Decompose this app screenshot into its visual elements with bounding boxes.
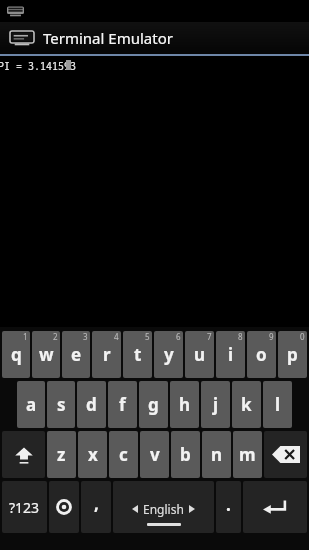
staticText: 7 [207, 331, 212, 342]
other: Keyboard active [7, 5, 24, 17]
staticText: o [256, 343, 267, 366]
staticText: x [88, 443, 98, 466]
staticText: s [57, 393, 66, 416]
staticText: 1 [23, 331, 28, 342]
button[interactable]: Enter [243, 481, 307, 533]
staticText: z [57, 443, 66, 466]
staticText: m [239, 443, 256, 466]
button[interactable]: u [185, 331, 214, 378]
button[interactable]: i [216, 331, 245, 378]
staticText: g [148, 393, 159, 416]
staticText: q [11, 343, 22, 366]
button[interactable]: w [32, 331, 60, 378]
staticText: , [94, 492, 99, 515]
button[interactable]: r [92, 331, 121, 378]
staticText: 9 [269, 331, 274, 342]
staticText: 5 [145, 331, 150, 342]
staticText: j [213, 393, 219, 416]
staticText: PI = 3.141593 [0, 59, 76, 73]
staticText: 2 [53, 331, 58, 342]
staticText: l [275, 393, 281, 416]
staticText: 3 [83, 331, 88, 342]
staticText: b [180, 443, 191, 466]
button[interactable]: m [233, 431, 262, 478]
button[interactable]: x [78, 431, 107, 478]
button[interactable]: Backspace [264, 431, 307, 478]
button[interactable]: n [202, 431, 231, 478]
button[interactable]: Input settings [49, 481, 79, 533]
staticText: t [134, 343, 142, 366]
button[interactable]: b [171, 431, 200, 478]
staticText: k [241, 393, 252, 416]
button[interactable]: ?123 [2, 481, 47, 533]
button[interactable]: t [123, 331, 152, 378]
button[interactable]: Shift [2, 431, 45, 478]
staticText: i [228, 343, 234, 366]
button[interactable]: y [154, 331, 183, 378]
button[interactable]: l [263, 381, 292, 428]
button[interactable]: v [140, 431, 169, 478]
button[interactable]: c [109, 431, 138, 478]
button[interactable]: k [232, 381, 261, 428]
button[interactable]: j [201, 381, 230, 428]
button[interactable]: d [77, 381, 106, 428]
button[interactable]: q [2, 331, 30, 378]
staticText: a [26, 393, 37, 416]
button[interactable]: o [247, 331, 276, 378]
staticText: English [143, 501, 184, 517]
staticText: f [119, 393, 126, 416]
button[interactable]: z [47, 431, 76, 478]
button[interactable]: , [81, 481, 111, 533]
staticText: Terminal Emulator [43, 28, 173, 48]
button[interactable]: h [170, 381, 199, 428]
button[interactable]: f [108, 381, 137, 428]
button[interactable]: . [216, 481, 241, 533]
staticText: c [119, 443, 128, 466]
staticText: h [179, 393, 191, 416]
button[interactable]: a [17, 381, 45, 428]
button[interactable]: e [62, 331, 90, 378]
staticText: 6 [176, 331, 181, 342]
button[interactable]: Terminal Emulator [0, 22, 309, 54]
staticText: y [164, 343, 174, 366]
staticText: ?123 [9, 498, 40, 517]
staticText: u [194, 343, 206, 366]
staticText: . [226, 493, 231, 516]
button[interactable]: Space, English [113, 481, 214, 533]
staticText: n [211, 443, 223, 466]
staticText: 8 [238, 331, 243, 342]
staticText: 4 [114, 331, 119, 342]
staticText: d [86, 393, 97, 416]
staticText: r [103, 343, 111, 366]
staticText: p [287, 343, 298, 366]
staticText: 0 [300, 331, 305, 342]
button[interactable]: g [139, 381, 168, 428]
staticText: v [150, 443, 160, 466]
button[interactable]: s [47, 381, 75, 428]
staticText: w [39, 343, 54, 366]
staticText: e [71, 343, 82, 366]
button[interactable]: p [278, 331, 307, 378]
